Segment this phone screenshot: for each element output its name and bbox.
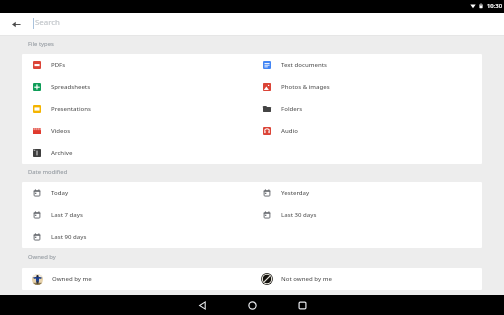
staticText: Spreadsheets xyxy=(51,83,91,91)
button[interactable]: Back xyxy=(0,13,32,35)
button[interactable]: Owned by me xyxy=(22,268,252,290)
staticText: Owned by xyxy=(28,253,56,261)
staticText: Archive xyxy=(51,149,73,157)
staticText: Last 30 days xyxy=(281,211,317,219)
staticText: Folders xyxy=(281,105,303,113)
staticText: Search xyxy=(35,17,60,28)
button[interactable]: Last 90 days xyxy=(22,226,252,248)
button[interactable]: Photos & images xyxy=(252,76,482,98)
staticText: Owned by me xyxy=(52,275,92,283)
button[interactable]: Recent apps xyxy=(277,295,327,315)
staticText: Not owned by me xyxy=(281,275,332,283)
staticText: File types xyxy=(28,40,54,48)
button[interactable]: Videos xyxy=(22,120,252,142)
button[interactable]: Folders xyxy=(252,98,482,120)
staticText: Yesterday xyxy=(281,189,310,197)
staticText: Videos xyxy=(51,127,71,135)
button[interactable]: Back xyxy=(177,295,227,315)
button[interactable]: Home xyxy=(227,295,277,315)
button[interactable]: Last 7 days xyxy=(22,204,252,226)
staticText: Photos & images xyxy=(281,83,330,91)
staticText: Presentations xyxy=(51,105,91,113)
staticText: Date modified xyxy=(28,168,68,176)
button[interactable]: Presentations xyxy=(22,98,252,120)
button[interactable]: Archive xyxy=(22,142,252,164)
staticText: Audio xyxy=(281,127,298,135)
staticText: 10:30 xyxy=(487,2,503,10)
button[interactable]: Not owned by me xyxy=(252,268,482,290)
button[interactable]: Today xyxy=(22,182,252,204)
staticText: Last 7 days xyxy=(51,211,83,219)
button[interactable]: PDFs xyxy=(22,54,252,76)
button[interactable]: Last 30 days xyxy=(252,204,482,226)
button[interactable]: Audio xyxy=(252,120,482,142)
staticText: Text documents xyxy=(281,61,327,69)
staticText: PDFs xyxy=(51,61,66,69)
button[interactable]: Spreadsheets xyxy=(22,76,252,98)
staticText: Today xyxy=(51,189,69,197)
staticText: Last 90 days xyxy=(51,233,87,241)
button[interactable]: Yesterday xyxy=(252,182,482,204)
button[interactable]: Text documents xyxy=(252,54,482,76)
